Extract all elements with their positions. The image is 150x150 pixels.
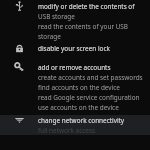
button[interactable]: Network connectivity [0, 115, 150, 135]
button[interactable]: Screen lock [0, 43, 38, 53]
button[interactable]: find accounts on the device [38, 82, 148, 92]
button[interactable]: disable your screen lock [38, 43, 148, 53]
button[interactable]: add or remove accounts [38, 62, 148, 72]
staticText: read the contents of your USB [38, 22, 129, 31]
staticText: storage [38, 32, 61, 41]
button[interactable]: read the contents of your USB [38, 21, 148, 31]
button[interactable]: Accounts [0, 62, 150, 112]
button[interactable]: create accounts and set passwords [38, 72, 148, 82]
staticText: modify or delete the contents of your [38, 2, 148, 11]
button[interactable]: USB storage [0, 1, 150, 41]
staticText: full network access [38, 126, 96, 135]
staticText: use accounts on the device [38, 103, 119, 112]
button[interactable]: change network connectivity [38, 115, 148, 125]
button[interactable]: storage [38, 31, 148, 41]
staticText: find accounts on the device [38, 83, 120, 92]
button[interactable]: Screen lock [0, 43, 150, 53]
staticText: read Google service configuration [38, 93, 140, 102]
button[interactable]: modify or delete the contents of your [38, 1, 148, 11]
button[interactable]: USB storage [0, 1, 38, 11]
staticText: change network connectivity [38, 116, 125, 125]
button[interactable]: USB storage [38, 11, 148, 21]
button[interactable]: Network connectivity [0, 115, 38, 125]
staticText: disable your screen lock [38, 44, 110, 53]
staticText: add or remove accounts [38, 63, 111, 72]
staticText: create accounts and set passwords [38, 73, 143, 82]
button[interactable]: read Google service configuration [38, 92, 148, 102]
staticText: USB storage [38, 12, 75, 21]
button[interactable]: Accounts [0, 62, 38, 72]
button[interactable]: use accounts on the device [38, 102, 148, 112]
button[interactable]: full network access [38, 125, 148, 135]
